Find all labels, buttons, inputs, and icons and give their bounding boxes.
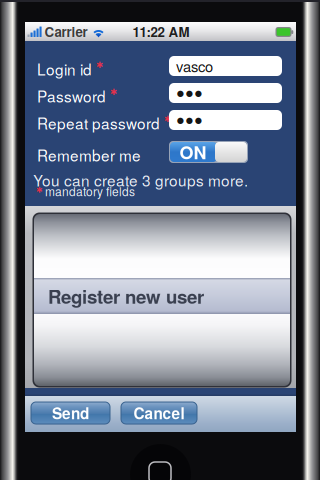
staticText: ON bbox=[179, 139, 206, 165]
staticText: Carrier bbox=[44, 22, 87, 41]
button[interactable]: ●●● bbox=[169, 110, 282, 130]
staticText: ●●● bbox=[176, 112, 203, 128]
staticText: Password bbox=[37, 85, 106, 107]
staticText: ✱ bbox=[36, 185, 43, 195]
staticText: Remember me bbox=[37, 144, 141, 166]
staticText: vasco bbox=[176, 55, 213, 76]
staticText: You can create 3 groups more. bbox=[33, 169, 248, 191]
staticText: Repeat password bbox=[37, 112, 160, 134]
staticText: ●●● bbox=[176, 85, 203, 101]
button[interactable]: ON bbox=[169, 141, 248, 163]
staticText: Send bbox=[52, 402, 89, 424]
staticText: 11:22 AM bbox=[132, 22, 189, 41]
staticText: mandatory fields bbox=[45, 182, 135, 200]
staticText: ✱ bbox=[110, 87, 117, 97]
staticText: Register new user bbox=[48, 283, 204, 309]
button[interactable]: vasco bbox=[169, 56, 282, 76]
button[interactable]: ●●● bbox=[169, 83, 282, 103]
staticText: Cancel bbox=[133, 402, 184, 424]
button[interactable]: Send bbox=[31, 402, 110, 424]
staticText: ✱ bbox=[96, 60, 103, 70]
button[interactable]: Cancel bbox=[121, 402, 197, 424]
staticText: ✱ bbox=[164, 114, 171, 124]
staticText: Login id bbox=[37, 58, 92, 80]
